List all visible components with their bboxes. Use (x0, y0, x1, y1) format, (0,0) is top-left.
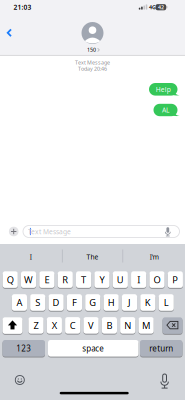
button[interactable]: V (83, 317, 99, 334)
button[interactable]: Q (3, 271, 18, 288)
staticText: Text Message (28, 227, 71, 236)
button[interactable]: K (140, 294, 155, 311)
button[interactable]: Dictate (158, 373, 172, 389)
button[interactable]: U (113, 271, 128, 288)
staticText: K (145, 296, 151, 309)
button[interactable]: C (65, 317, 80, 334)
button[interactable]: Text Message field (23, 225, 179, 237)
button[interactable]: 123 (2, 339, 45, 357)
staticText: D (53, 296, 60, 309)
staticText: The (86, 253, 98, 261)
staticText: A (16, 296, 22, 309)
staticText: F (72, 296, 77, 309)
staticText: 123 (16, 343, 31, 354)
button[interactable]: B (102, 317, 117, 334)
staticText: return (149, 343, 173, 354)
staticText: Y (99, 273, 104, 286)
staticText: X (52, 319, 57, 332)
button[interactable]: Contact 150 (81, 22, 104, 53)
button[interactable]: O (149, 271, 165, 288)
button[interactable]: T (76, 271, 91, 288)
button[interactable]: R (58, 271, 73, 288)
button[interactable]: X (47, 317, 62, 334)
staticText: G (89, 296, 96, 309)
button[interactable]: N (120, 317, 135, 334)
staticText: 21:03 (13, 3, 31, 12)
button[interactable]: Y (94, 271, 109, 288)
staticText: I (137, 273, 140, 286)
staticText: AL (162, 106, 169, 114)
button[interactable]: G (85, 294, 100, 311)
staticText: U (117, 273, 124, 286)
staticText: V (88, 319, 94, 332)
button[interactable]: L (159, 294, 174, 311)
staticText: 4G (149, 4, 156, 11)
staticText: H (108, 296, 115, 309)
staticText: M (142, 319, 150, 332)
button[interactable]: I'm (125, 247, 183, 267)
button[interactable]: Attach (9, 227, 18, 236)
staticText: N (124, 319, 131, 332)
staticText: I'm (150, 253, 159, 261)
button[interactable]: D (48, 294, 64, 311)
staticText: B (106, 319, 112, 332)
staticText: W (24, 273, 33, 286)
button[interactable]: M (138, 317, 154, 334)
button[interactable]: Back (6, 28, 13, 38)
button[interactable]: P (168, 271, 183, 288)
button[interactable]: F (67, 294, 82, 311)
button[interactable]: W (21, 271, 36, 288)
button[interactable]: Shift (2, 317, 22, 334)
staticText: T (81, 273, 86, 286)
staticText: C (70, 319, 76, 332)
staticText: E (44, 273, 49, 286)
staticText: 150 (87, 46, 96, 53)
button[interactable]: Emoji (15, 375, 24, 384)
staticText: P (172, 273, 178, 286)
button[interactable]: The (63, 247, 121, 267)
staticText: R (62, 273, 68, 286)
button[interactable]: E (39, 271, 54, 288)
button[interactable]: Z (28, 317, 44, 334)
staticText: Today 20:46 (78, 65, 107, 72)
staticText: L (164, 296, 169, 309)
staticText: Text Message (75, 59, 110, 66)
button[interactable]: J (122, 294, 137, 311)
staticText: O (153, 273, 160, 286)
button[interactable]: I (131, 271, 146, 288)
button[interactable]: A (12, 294, 27, 311)
button[interactable]: S (30, 294, 45, 311)
button[interactable]: Delete (162, 317, 182, 334)
staticText: Z (33, 319, 38, 332)
staticText: Q (7, 273, 14, 286)
staticText: space (82, 343, 104, 354)
button[interactable]: H (103, 294, 119, 311)
staticText: Help (156, 85, 171, 94)
staticText: J (128, 296, 131, 309)
staticText: S (35, 296, 40, 309)
button[interactable]: return (140, 339, 182, 357)
button[interactable]: I (2, 247, 60, 267)
staticText: I (30, 253, 32, 261)
staticText: 42 (158, 4, 164, 11)
button[interactable]: space (48, 339, 138, 357)
